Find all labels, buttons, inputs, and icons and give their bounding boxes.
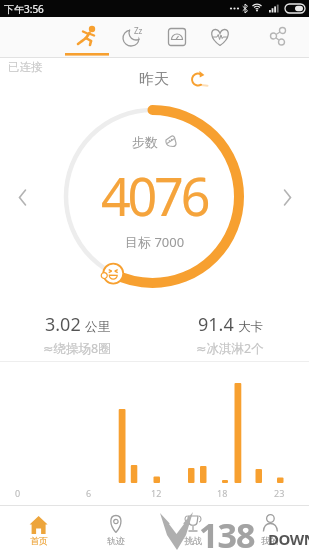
staticText: 步数 xyxy=(132,134,158,150)
staticText: 12 xyxy=(151,487,162,499)
staticText: 下午3:56 xyxy=(4,2,44,16)
staticText: 4076 xyxy=(101,160,208,231)
staticText: 首页 xyxy=(30,535,48,546)
button[interactable] xyxy=(123,17,185,58)
staticText: 138 xyxy=(199,512,255,550)
button[interactable] xyxy=(282,189,292,206)
button[interactable] xyxy=(61,17,123,58)
staticText: 目标 7000 xyxy=(125,233,185,251)
staticText: 轨迹 xyxy=(107,535,125,546)
staticText: 已连接 xyxy=(8,60,43,74)
staticText: 6 xyxy=(86,487,92,499)
button[interactable]: 昨天 xyxy=(139,70,207,89)
staticText: 公里 xyxy=(85,319,110,335)
staticText: ≈绕操场8圈 xyxy=(43,340,111,357)
staticText: ≈冰淇淋2个 xyxy=(196,340,264,357)
button[interactable] xyxy=(78,505,155,550)
button[interactable] xyxy=(185,17,247,58)
staticText: 23 xyxy=(274,487,285,499)
staticText: 3.02 xyxy=(45,312,81,337)
staticText: 我的 xyxy=(261,535,279,546)
staticText: DOWN xyxy=(268,529,309,549)
staticText: 昨天 xyxy=(139,70,169,89)
staticText: 91.4 xyxy=(198,312,234,337)
button[interactable] xyxy=(18,189,28,206)
staticText: 挑战 xyxy=(184,535,202,546)
staticText: 大卡 xyxy=(238,319,263,335)
staticText: 0 xyxy=(15,487,21,499)
staticText: 18 xyxy=(217,487,228,499)
button[interactable] xyxy=(155,505,232,550)
button[interactable] xyxy=(247,17,309,58)
staticText: Zz xyxy=(134,25,143,36)
button[interactable] xyxy=(0,17,61,58)
button[interactable] xyxy=(0,505,78,550)
button[interactable] xyxy=(232,505,309,550)
